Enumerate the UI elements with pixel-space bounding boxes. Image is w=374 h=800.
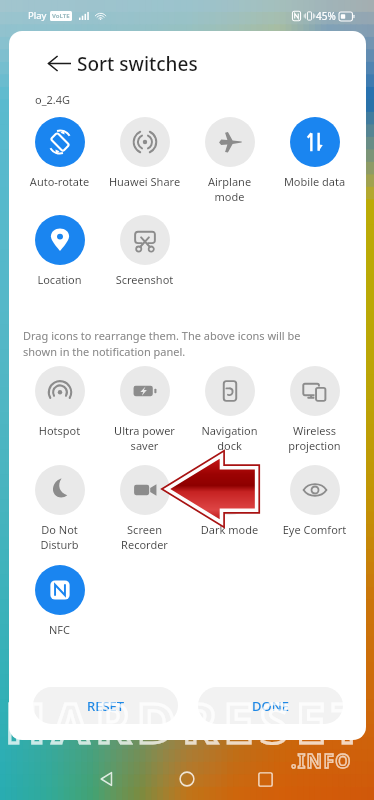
button[interactable]: Mobile data: [272, 117, 357, 213]
staticText: VoLTE: [52, 12, 70, 20]
button[interactable]: NFC: [17, 565, 102, 661]
button[interactable]: Ultra power saver: [102, 366, 187, 462]
staticText: Do Not Disturb: [17, 522, 102, 552]
button[interactable]: Recents: [250, 764, 280, 794]
staticText: Huawei Share: [102, 174, 187, 189]
staticText: HARDRESET: [5, 686, 370, 758]
staticText: Screen Recorder: [102, 522, 187, 552]
button[interactable]: Location: [17, 215, 102, 311]
button[interactable]: Screenshot: [102, 215, 187, 311]
staticText: Auto-rotate: [17, 174, 102, 189]
staticText: Ultra power saver: [102, 423, 187, 453]
button[interactable]: Huawei Share: [102, 117, 187, 213]
staticText: Dark mode: [187, 522, 272, 537]
button[interactable]: RESET: [33, 687, 178, 724]
staticText: Play: [28, 9, 47, 22]
staticText: 45%: [316, 9, 336, 23]
button[interactable]: Eye Comfort: [272, 465, 357, 561]
button[interactable]: Do Not Disturb: [17, 465, 102, 561]
staticText: Location: [17, 272, 102, 287]
staticText: Drag icons to rearrange them. The above …: [23, 328, 301, 359]
staticText: RESET: [87, 697, 125, 715]
staticText: Hotspot: [17, 423, 102, 438]
button[interactable]: Dark mode: [187, 465, 272, 561]
button[interactable]: Hotspot: [17, 366, 102, 462]
button[interactable]: Back: [38, 42, 80, 84]
staticText: Mobile data: [272, 174, 357, 189]
button[interactable]: Airplane mode: [187, 117, 272, 213]
staticText: o_2.4G: [35, 92, 71, 107]
staticText: Wireless projection: [272, 423, 357, 453]
staticText: Navigation dock: [187, 423, 272, 453]
staticText: .INFO: [291, 748, 352, 774]
staticText: DONE: [252, 697, 290, 715]
staticText: Airplane mode: [187, 174, 272, 204]
staticText: Screenshot: [102, 272, 187, 287]
button[interactable]: DONE: [198, 687, 343, 724]
button[interactable]: Screen Recorder: [102, 465, 187, 561]
staticText: Sort switches: [77, 51, 198, 77]
staticText: Eye Comfort: [272, 522, 357, 537]
button[interactable]: Home: [172, 764, 202, 794]
button[interactable]: Back: [92, 764, 122, 794]
staticText: NFC: [17, 622, 102, 637]
button[interactable]: Wireless projection: [272, 366, 357, 462]
button[interactable]: Navigation dock: [187, 366, 272, 462]
button[interactable]: Auto-rotate: [17, 117, 102, 213]
